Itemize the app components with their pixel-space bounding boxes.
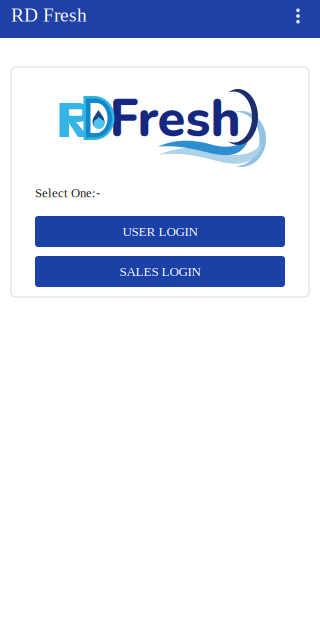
button[interactable]: SALES LOGIN <box>35 256 285 287</box>
staticText: Select One:- <box>35 186 100 200</box>
staticText: Fresh <box>109 84 240 153</box>
button[interactable]: USER LOGIN <box>35 216 285 247</box>
button[interactable]: More options <box>282 0 314 38</box>
staticText: USER LOGIN <box>122 224 197 239</box>
staticText: SALES LOGIN <box>119 264 200 279</box>
staticText: RD Fresh <box>11 4 87 26</box>
